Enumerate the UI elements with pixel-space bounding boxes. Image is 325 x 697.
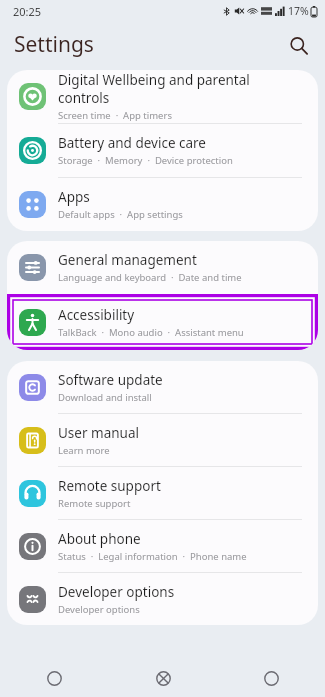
staticText: Digital Wellbeing and parental controls [58, 71, 302, 107]
button[interactable]: Remote support [7, 467, 318, 519]
button[interactable]: Search [281, 28, 315, 62]
staticText: Settings [14, 30, 94, 59]
staticText: Screen time · App timers [58, 109, 172, 122]
staticText: Developer options [58, 583, 175, 601]
staticText: Developer options [58, 603, 140, 616]
staticText: About phone [58, 530, 141, 548]
button[interactable]: Apps [7, 178, 318, 231]
button[interactable]: Developer options [7, 573, 318, 625]
staticText: Battery and device care [58, 134, 206, 152]
staticText: Remote support [58, 477, 161, 495]
staticText: 17% [288, 4, 309, 18]
button[interactable]: Digital Wellbeing and parental controls [7, 70, 318, 123]
staticText: Remote support [58, 497, 131, 510]
staticText: Storage · Memory · Device protection [58, 154, 233, 167]
button[interactable]: Software update [7, 361, 318, 413]
staticText: TalkBack · Mono audio · Assistant menu [58, 326, 244, 339]
staticText: Default apps · App settings [58, 208, 183, 221]
button[interactable]: User manual [7, 414, 318, 466]
staticText: 20:25 [13, 4, 42, 19]
staticText: Software update [58, 371, 163, 389]
staticText: Download and install [58, 391, 152, 404]
button[interactable]: Battery and device care [7, 124, 318, 177]
staticText: Accessibility [58, 306, 135, 324]
staticText: Status · Legal information · Phone name [58, 550, 247, 563]
staticText: Learn more [58, 444, 110, 457]
staticText: Apps [58, 188, 90, 206]
button[interactable]: Accessibility [7, 294, 318, 350]
button[interactable]: Back [217, 659, 325, 697]
staticText: User manual [58, 424, 139, 442]
button[interactable]: General management [7, 241, 318, 294]
staticText: Language and keyboard · Date and time [58, 271, 242, 284]
button[interactable]: Home [109, 659, 217, 697]
staticText: General management [58, 251, 197, 269]
button[interactable]: Recents [0, 659, 109, 697]
button[interactable]: About phone [7, 520, 318, 572]
